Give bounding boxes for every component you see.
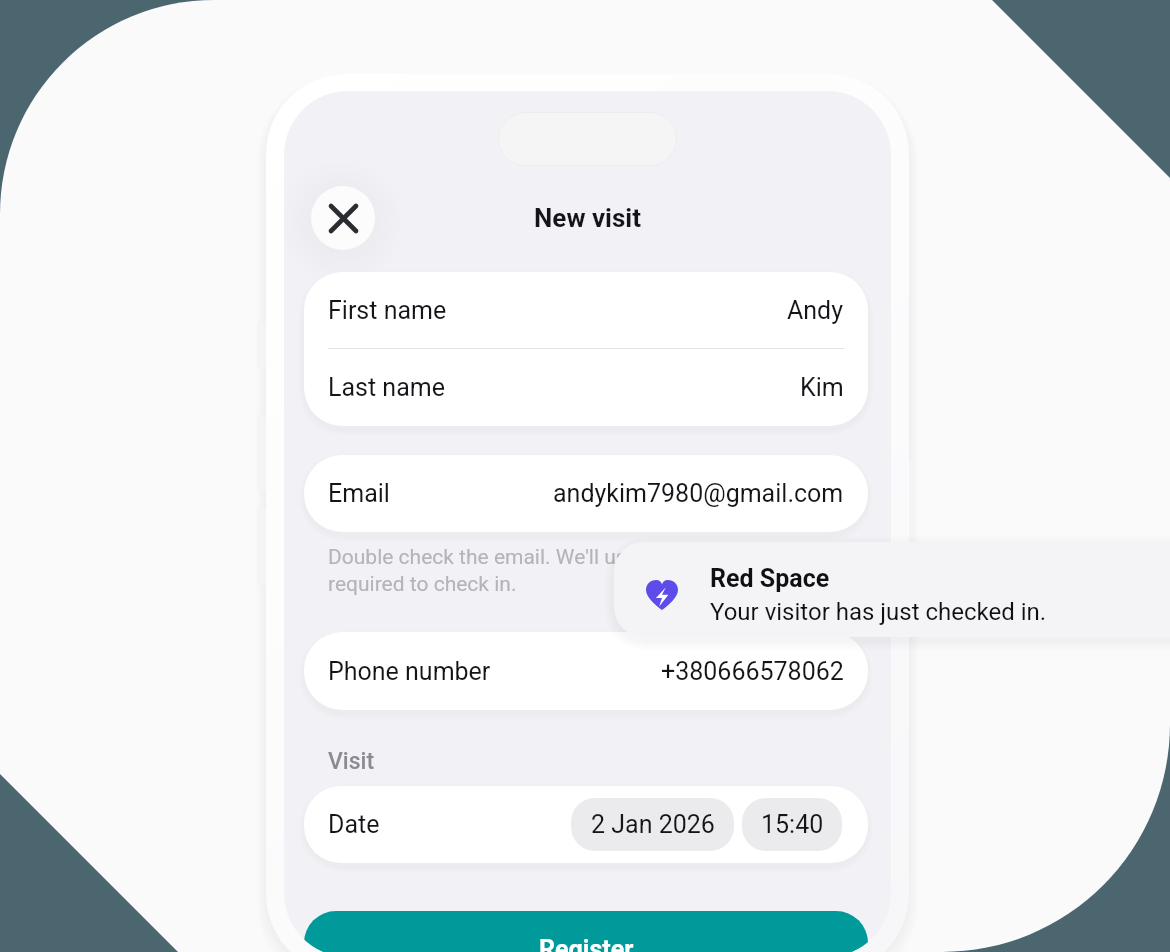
button[interactable]: Register bbox=[304, 911, 868, 952]
staticText: Phone number bbox=[328, 657, 491, 686]
staticText: Double check the email. We'll use it to … bbox=[328, 545, 830, 596]
button[interactable]: Close bbox=[311, 186, 375, 250]
button[interactable]: Phone number bbox=[304, 632, 868, 710]
staticText: Date bbox=[328, 810, 380, 839]
staticText: andykim7980@gmail.com bbox=[553, 479, 844, 508]
button[interactable]: Date bbox=[304, 786, 868, 863]
staticText: Kim bbox=[800, 373, 844, 402]
staticText: 2 Jan 2026 bbox=[591, 810, 715, 839]
staticText: New visit bbox=[534, 203, 642, 233]
staticText: Your visitor has just checked in. bbox=[710, 598, 1047, 626]
staticText: Red Space bbox=[710, 564, 830, 593]
staticText: 15:40 bbox=[761, 810, 824, 839]
staticText: Andy bbox=[787, 296, 844, 325]
staticText: Register bbox=[539, 935, 634, 952]
button[interactable]: Email bbox=[304, 455, 868, 532]
staticText: Visit bbox=[328, 748, 375, 775]
staticText: Email bbox=[328, 479, 390, 508]
staticText: First name bbox=[328, 296, 447, 325]
staticText: Last name bbox=[328, 373, 445, 402]
button[interactable]: 2 Jan 2026 bbox=[571, 798, 734, 851]
button[interactable]: 15:40 bbox=[742, 798, 842, 851]
staticText: +380666578062 bbox=[661, 657, 844, 686]
